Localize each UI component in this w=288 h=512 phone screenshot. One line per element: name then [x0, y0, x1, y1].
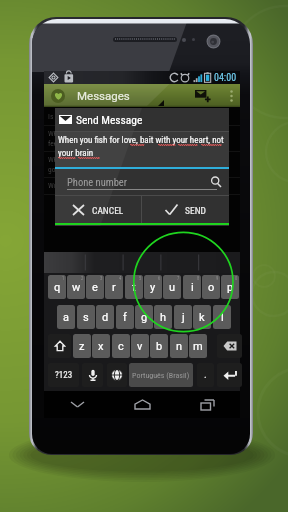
staticText: 7 — [177, 276, 180, 281]
staticText: q — [54, 281, 61, 294]
staticText: 0 — [235, 276, 238, 281]
staticText: ?123 — [55, 370, 73, 381]
staticText: a — [63, 311, 69, 324]
button[interactable]: c — [112, 334, 130, 358]
button[interactable]: More options — [224, 84, 238, 107]
staticText: 6 — [158, 276, 161, 281]
staticText: n — [176, 340, 183, 353]
staticText: h — [160, 311, 167, 324]
button[interactable]: l — [213, 305, 231, 329]
button[interactable]: . — [197, 363, 214, 387]
button[interactable]: SEND — [142, 196, 229, 223]
button[interactable]: Pick contact — [208, 174, 224, 190]
staticText: u — [169, 281, 176, 294]
staticText: 04:00 — [214, 72, 237, 84]
button[interactable]: Shift — [48, 334, 71, 358]
staticText: . — [204, 369, 207, 381]
button[interactable]: q — [48, 275, 66, 299]
staticText: Send Message — [76, 113, 143, 126]
staticText: d — [102, 311, 109, 324]
staticText: k — [199, 311, 205, 324]
staticText: g — [141, 311, 148, 324]
button[interactable]: w — [67, 275, 85, 299]
staticText: CANCEL — [92, 205, 124, 216]
staticText: o — [208, 281, 215, 294]
staticText: s — [83, 311, 89, 324]
button[interactable]: New message — [189, 84, 215, 107]
button[interactable]: t — [125, 275, 143, 299]
button[interactable]: h — [154, 305, 172, 329]
staticText: r — [112, 281, 116, 294]
button[interactable]: Voice input — [82, 363, 103, 387]
staticText: i — [191, 281, 194, 294]
button[interactable]: b — [150, 334, 168, 358]
button[interactable]: s — [77, 305, 95, 329]
button[interactable]: a — [57, 305, 75, 329]
button[interactable]: n — [170, 334, 188, 358]
staticText: When you fish for love, feed with your h… — [48, 129, 236, 147]
staticText: Português (Brasil) — [132, 371, 190, 380]
staticText: 1 — [62, 276, 65, 281]
staticText: p — [227, 281, 234, 294]
button[interactable]: u — [163, 275, 181, 299]
staticText: j — [182, 311, 185, 324]
button[interactable]: Home — [110, 391, 175, 418]
staticText: 4 — [119, 276, 122, 281]
button[interactable]: Change language — [107, 363, 127, 387]
button[interactable]: m — [189, 334, 207, 358]
staticText: w — [72, 281, 81, 294]
button[interactable]: Português (Brasil) — [129, 363, 193, 387]
button[interactable]: x — [92, 334, 110, 358]
staticText: Phone number — [67, 176, 127, 188]
button[interactable]: r — [105, 275, 123, 299]
staticText: Work like you don't need — [48, 181, 236, 190]
button[interactable]: Recent apps — [175, 391, 240, 418]
staticText: Messages — [77, 89, 130, 102]
button[interactable]: g — [135, 305, 153, 329]
staticText: 5 — [139, 276, 142, 281]
staticText: b — [156, 340, 163, 353]
staticText: l — [221, 311, 224, 324]
button[interactable]: o — [202, 275, 220, 299]
staticText: x — [98, 340, 104, 353]
button[interactable]: Enter — [217, 363, 242, 387]
button[interactable]: Backspace — [217, 334, 242, 358]
button[interactable]: v — [131, 334, 149, 358]
staticText: 3 — [100, 276, 103, 281]
button[interactable]: z — [73, 334, 91, 358]
button[interactable]: CANCEL — [55, 196, 141, 223]
staticText: 8 — [197, 276, 200, 281]
staticText: 2 — [81, 276, 84, 281]
staticText: t — [132, 281, 136, 294]
button[interactable]: e — [86, 275, 104, 299]
staticText: f — [123, 311, 127, 324]
button[interactable]: p — [221, 275, 239, 299]
staticText: your brain — [58, 148, 94, 159]
button[interactable]: d — [96, 305, 114, 329]
button[interactable]: ?123 — [48, 363, 79, 387]
button[interactable]: k — [193, 305, 211, 329]
staticText: 9 — [216, 276, 219, 281]
staticText: z — [79, 340, 85, 353]
staticText: y — [150, 281, 156, 294]
staticText: m — [193, 340, 203, 353]
button[interactable]: y — [144, 275, 162, 299]
button[interactable]: Back — [44, 391, 110, 418]
staticText: c — [118, 340, 124, 353]
button[interactable]: i — [183, 275, 201, 299]
staticText: e — [92, 281, 98, 294]
staticText: When you fish for love, bait with your h… — [58, 135, 224, 146]
staticText: SEND — [185, 205, 206, 216]
staticText: Is this the real life? — [48, 112, 236, 121]
button[interactable]: f — [116, 305, 134, 329]
staticText: Whatever you are, be a good one — [48, 155, 236, 173]
staticText: v — [137, 340, 143, 353]
button[interactable]: j — [174, 305, 192, 329]
